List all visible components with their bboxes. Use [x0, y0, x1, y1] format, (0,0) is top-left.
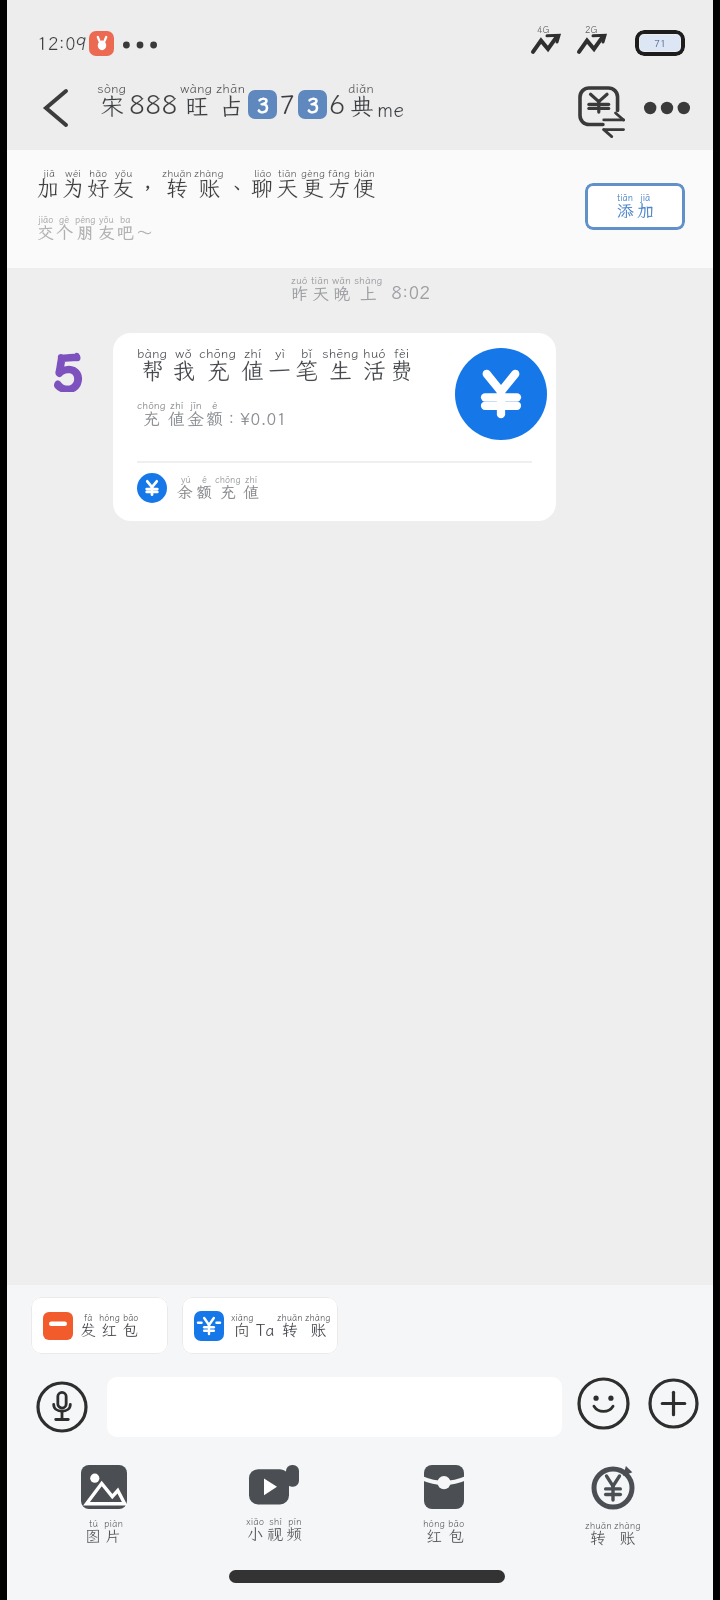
staticText: bāo [448, 1517, 465, 1530]
staticText: 3 [307, 92, 319, 118]
staticText: zhàng [305, 1312, 331, 1324]
staticText: 个 [56, 221, 73, 243]
staticText: bāo [123, 1312, 139, 1324]
staticText: 发 [80, 1319, 97, 1340]
staticText: me [377, 96, 405, 122]
staticText: 充 [143, 407, 160, 429]
staticText: 小 [247, 1523, 264, 1544]
staticText: 生 [329, 355, 352, 385]
button[interactable]: tú [56, 1465, 152, 1546]
staticText: 宋 [100, 90, 124, 122]
staticText: liáo [254, 166, 272, 180]
staticText: chōng [199, 345, 237, 362]
staticText: gèng [301, 166, 326, 180]
staticText: wǎn [332, 274, 351, 287]
staticText: 账 [310, 1319, 327, 1340]
staticText: ～ [136, 221, 153, 243]
staticText: zhuǎn [162, 166, 192, 180]
staticText: 友 [112, 173, 135, 202]
staticText: bàng [137, 345, 168, 362]
staticText: 账 [198, 173, 221, 202]
button[interactable]: yú [137, 473, 260, 503]
staticText: wéi [65, 166, 82, 180]
staticText: tú [89, 1517, 99, 1530]
button[interactable]: bàng [113, 333, 556, 521]
staticText: 朋 [77, 221, 94, 243]
staticText: wàng [180, 80, 213, 97]
staticText: 值 [168, 407, 185, 429]
staticText: péng [75, 214, 96, 226]
staticText: 友 [98, 221, 115, 243]
staticText: 转 [282, 1319, 299, 1340]
staticText: 频 [286, 1523, 303, 1544]
staticText: tiān [311, 274, 329, 287]
staticText: jiā [43, 166, 55, 180]
staticText: 晚 [333, 282, 350, 304]
staticText: xiǎo [246, 1515, 265, 1528]
button[interactable]: tiān [585, 183, 685, 230]
button[interactable] [31, 84, 79, 132]
staticText: 帮 [141, 355, 164, 385]
staticText: jiā [640, 192, 651, 204]
staticText: fèi [394, 345, 410, 362]
staticText: 聊 [251, 173, 274, 202]
staticText: 余 [177, 481, 194, 502]
staticText: ：¥0.01 [223, 407, 287, 429]
staticText: é [212, 399, 218, 412]
staticText: 视 [267, 1523, 284, 1544]
staticText: 图 [85, 1525, 102, 1546]
button[interactable] [639, 86, 695, 130]
button[interactable]: xiǎo [226, 1465, 322, 1544]
staticText: 典 [350, 90, 374, 122]
staticText: 费 [390, 355, 413, 385]
button[interactable] [648, 1378, 699, 1429]
staticText: 包 [448, 1525, 465, 1546]
staticText: zhí [245, 474, 258, 486]
button[interactable]: zhuǎn [565, 1465, 661, 1548]
staticText: 5 [53, 338, 83, 392]
staticText: 额 [196, 481, 213, 502]
staticText: 7 [279, 86, 296, 122]
staticText: jīn [190, 399, 202, 412]
staticText: jiāo [38, 214, 54, 226]
staticText: zuó [291, 274, 308, 287]
staticText: 加 [637, 199, 654, 221]
staticText: 6 [329, 86, 346, 122]
staticText: 转 [166, 173, 189, 202]
staticText: zhuǎn [277, 1312, 303, 1324]
staticText: 3 [257, 92, 269, 118]
staticText: Ta [256, 1319, 275, 1340]
button[interactable] [36, 1381, 88, 1433]
staticText: biàn [354, 166, 375, 180]
staticText: 12:09 [37, 31, 87, 55]
staticText: 添 [617, 199, 634, 221]
staticText: hóng [423, 1517, 446, 1530]
staticText: yì [275, 345, 285, 362]
staticText: 方 [328, 173, 351, 202]
staticText: 更 [302, 173, 325, 202]
staticText: 2G [585, 24, 598, 36]
staticText: huó [363, 345, 386, 362]
staticText: 额 [206, 407, 223, 429]
button[interactable] [577, 1377, 630, 1430]
button[interactable]: hóng [396, 1465, 492, 1546]
staticText: 、 [226, 173, 249, 202]
staticText: zhàng [194, 166, 224, 180]
staticText: zhàng [614, 1519, 641, 1532]
staticText: 片 [105, 1525, 122, 1546]
button[interactable]: fà [31, 1297, 168, 1354]
staticText: shì [269, 1515, 282, 1528]
staticText: 5 [53, 338, 83, 392]
staticText: 笔 [295, 355, 318, 385]
button[interactable]: xiàng [182, 1297, 338, 1354]
staticText: zhuǎn [585, 1519, 612, 1532]
staticText: 值 [241, 355, 264, 385]
staticText: 便 [353, 173, 376, 202]
staticText: piàn [104, 1517, 123, 1530]
staticText: 好 [87, 173, 110, 202]
staticText: fà [84, 1312, 93, 1324]
button[interactable] [573, 80, 629, 136]
staticText: 上 [360, 282, 377, 304]
staticText: zhān [216, 80, 246, 97]
